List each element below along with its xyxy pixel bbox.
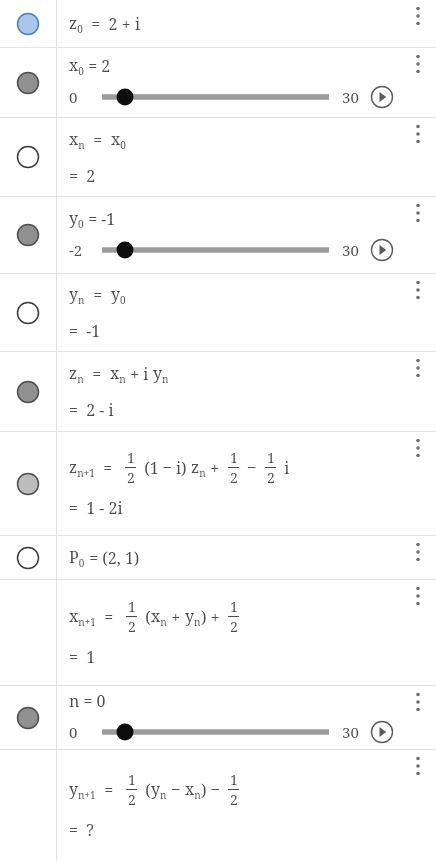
staticText: 2 xyxy=(128,617,136,636)
button[interactable] xyxy=(99,720,332,744)
staticText: x0 xyxy=(111,128,126,151)
button[interactable] xyxy=(99,85,332,109)
button[interactable]: More options xyxy=(403,198,433,228)
staticText: + i xyxy=(126,363,153,385)
button[interactable]: Toggle visibility xyxy=(13,298,43,328)
staticText: = 1 xyxy=(69,646,96,668)
staticText: = 2 xyxy=(69,165,96,187)
staticText: = -1 xyxy=(84,208,116,230)
button[interactable]: More options xyxy=(403,433,433,463)
staticText: zn xyxy=(69,362,84,385)
staticText: + xyxy=(167,606,185,628)
button[interactable]: Toggle visibility xyxy=(0,48,436,117)
button[interactable]: More options xyxy=(403,119,433,149)
staticText: xn xyxy=(185,778,201,801)
staticText: 1 xyxy=(267,448,275,467)
button[interactable]: Toggle visibility xyxy=(13,543,43,573)
staticText: = 2 - i xyxy=(69,399,114,421)
staticText: ‒ xyxy=(167,779,185,801)
button[interactable]: Toggle visibility xyxy=(13,469,43,499)
staticText: ) + xyxy=(201,606,224,628)
staticText: (1 ‒ i) xyxy=(140,457,191,479)
staticText: + xyxy=(206,457,224,479)
staticText: = xyxy=(85,284,111,306)
staticText: 1 xyxy=(128,770,136,789)
staticText: = xyxy=(95,457,121,479)
staticText: 0 xyxy=(69,87,78,107)
button[interactable]: More options xyxy=(403,353,433,383)
staticText: = xyxy=(84,363,110,385)
staticText: ( xyxy=(141,779,151,801)
button[interactable]: Play animation xyxy=(368,718,396,746)
staticText: 2 xyxy=(128,790,136,809)
staticText: = xyxy=(96,779,122,801)
staticText: 1 xyxy=(230,448,238,467)
button[interactable]: Toggle visibility xyxy=(13,68,43,98)
button[interactable]: Toggle visibility xyxy=(0,352,436,431)
staticText: 1 xyxy=(128,597,136,616)
button[interactable]: Toggle visibility xyxy=(0,432,436,535)
button[interactable]: Toggle visibility xyxy=(0,536,436,579)
staticText: 2 xyxy=(267,468,275,487)
staticText: xn xyxy=(110,362,126,385)
staticText: = 1 - 2i xyxy=(69,497,123,519)
staticText: yn xyxy=(151,778,167,801)
button[interactable]: More options xyxy=(403,687,433,717)
button[interactable]: xn+1 xyxy=(0,580,436,685)
staticText: xn+1 xyxy=(69,605,96,628)
staticText: = -1 xyxy=(69,320,101,342)
staticText: xn xyxy=(69,128,85,151)
staticText: 2 xyxy=(230,790,238,809)
staticText: yn xyxy=(185,605,201,628)
button[interactable]: More options xyxy=(403,751,433,781)
staticText: = 2 xyxy=(84,55,111,77)
staticText: zn+1 xyxy=(69,456,95,479)
button[interactable]: Play animation xyxy=(368,236,396,264)
button[interactable]: Toggle visibility xyxy=(0,118,436,196)
staticText: ‒ xyxy=(243,457,261,479)
staticText: 30 xyxy=(342,240,359,260)
staticText: 30 xyxy=(342,722,359,742)
staticText: 0 xyxy=(69,722,78,742)
staticText: yn+1 xyxy=(69,778,96,801)
staticText: i xyxy=(280,457,290,479)
staticText: z0 xyxy=(69,12,83,35)
button[interactable]: Toggle visibility xyxy=(13,142,43,172)
staticText: P0 xyxy=(69,546,85,569)
staticText: x0 xyxy=(69,54,84,77)
staticText: ) ‒ xyxy=(201,779,224,801)
button[interactable]: Play animation xyxy=(368,83,396,111)
staticText: i xyxy=(135,13,141,35)
staticText: ( xyxy=(141,606,151,628)
button[interactable]: Toggle visibility xyxy=(0,0,436,47)
staticText: xn xyxy=(151,605,167,628)
button[interactable]: More options xyxy=(403,537,433,567)
button[interactable]: More options xyxy=(403,49,433,79)
staticText: = 2 + xyxy=(83,13,135,35)
button[interactable]: Toggle visibility xyxy=(0,274,436,351)
button[interactable] xyxy=(99,238,332,262)
button[interactable]: Toggle visibility xyxy=(13,220,43,250)
staticText: 2 xyxy=(230,468,238,487)
staticText: 1 xyxy=(127,448,135,467)
staticText: yn xyxy=(69,283,85,306)
button[interactable]: Toggle visibility xyxy=(13,377,43,407)
button[interactable]: yn+1 xyxy=(0,750,436,861)
button[interactable]: Toggle visibility xyxy=(0,686,436,749)
button[interactable]: Toggle visibility xyxy=(0,197,436,273)
staticText: zn xyxy=(191,456,206,479)
staticText: yn xyxy=(153,362,169,385)
staticText: -2 xyxy=(69,240,83,260)
staticText: = ? xyxy=(69,819,94,841)
staticText: 2 xyxy=(127,468,135,487)
button[interactable]: Toggle visibility xyxy=(13,9,43,39)
staticText: n = 0 xyxy=(69,690,106,712)
staticText: y0 xyxy=(69,207,84,230)
staticText: 2 xyxy=(230,617,238,636)
button[interactable]: More options xyxy=(403,581,433,611)
button[interactable]: More options xyxy=(403,275,433,305)
button[interactable]: More options xyxy=(403,1,433,31)
staticText: 1 xyxy=(230,770,238,789)
staticText: 30 xyxy=(342,87,359,107)
button[interactable]: Toggle visibility xyxy=(13,703,43,733)
